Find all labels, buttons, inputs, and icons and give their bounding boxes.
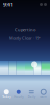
staticText: More (40, 95, 47, 99)
staticText: Today (2, 95, 10, 99)
staticText: Mostly Clear · 19° (9, 35, 41, 41)
button[interactable]: Today (0, 86, 12, 105)
button[interactable]: Daily (25, 86, 37, 105)
staticText: Hourly (14, 95, 23, 99)
staticText: 9:41 (3, 1, 13, 8)
button[interactable]: More (37, 86, 50, 105)
button[interactable]: Hourly (12, 86, 25, 105)
staticText: Daily (28, 95, 35, 99)
staticText: Cupertino (15, 27, 35, 32)
